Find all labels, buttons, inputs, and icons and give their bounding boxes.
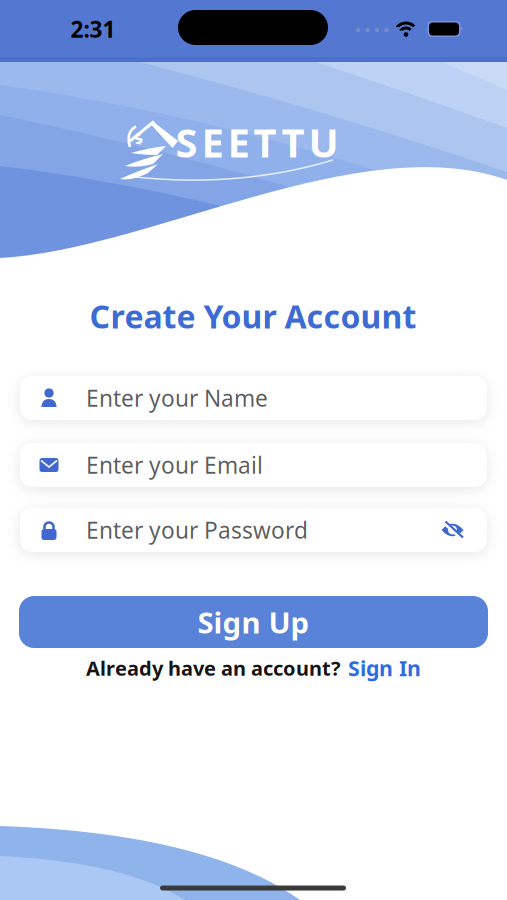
button[interactable]: Sign In: [348, 654, 421, 682]
button[interactable]: Sign Up: [19, 596, 488, 648]
staticText: 2:31: [70, 14, 115, 44]
button[interactable]: Enter your Email: [20, 443, 487, 487]
staticText: SEETTU: [175, 115, 338, 168]
button[interactable]: Enter your Name: [20, 376, 487, 420]
staticText: Create Your Account: [89, 295, 416, 337]
staticText: Enter your Email: [86, 450, 263, 480]
staticText: $: [134, 129, 142, 148]
staticText: Already have an account?: [86, 655, 341, 681]
staticText: Sign In: [348, 654, 421, 682]
button[interactable]: Show password: [440, 519, 465, 540]
button[interactable]: Enter your Password: [20, 508, 487, 552]
staticText: Enter your Password: [86, 515, 308, 545]
staticText: Enter your Name: [86, 383, 268, 413]
staticText: Sign Up: [197, 602, 309, 641]
